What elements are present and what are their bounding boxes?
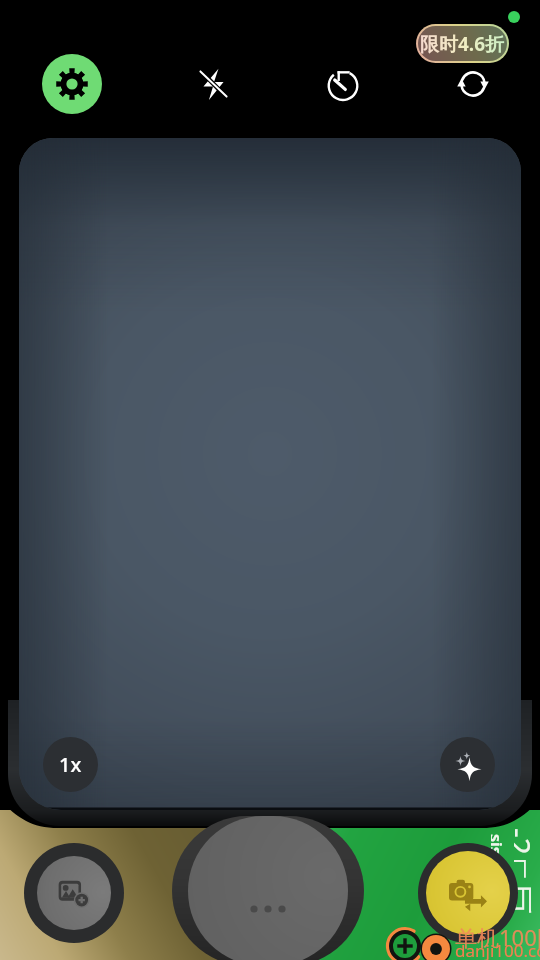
staticText: sis (491, 834, 507, 855)
staticText: 限时4.6折 (420, 31, 505, 57)
button[interactable]: Auto enhance (440, 737, 495, 792)
staticText: -2ㄷ巨ㄹ (514, 828, 540, 938)
button[interactable]: Flash off (189, 60, 237, 108)
staticText: 1x (59, 751, 82, 778)
button[interactable]: Switch to camera (418, 843, 518, 943)
button[interactable]: 限时4.6折 (416, 24, 509, 63)
staticText: danji100.com (455, 939, 540, 960)
staticText: 单机100网 (455, 922, 540, 952)
button[interactable]: Gallery (24, 843, 124, 943)
button[interactable]: Timer (319, 60, 367, 108)
button[interactable]: More options (172, 816, 364, 960)
button[interactable]: Settings (42, 54, 102, 114)
button[interactable]: Switch camera (449, 60, 497, 108)
button[interactable]: 1x (43, 737, 98, 792)
